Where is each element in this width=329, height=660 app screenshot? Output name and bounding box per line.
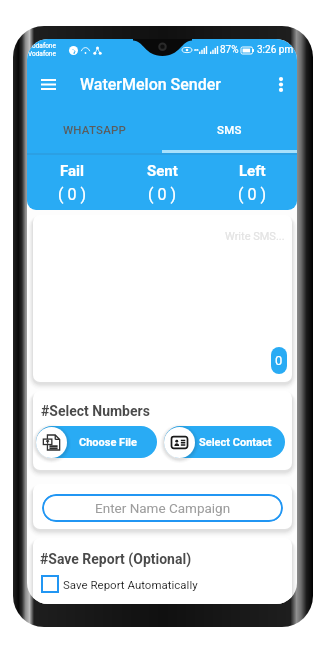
staticText: Choose File — [79, 436, 137, 449]
staticText: Left — [239, 162, 266, 180]
staticText: Vodafone — [28, 42, 56, 50]
staticText: 0 — [275, 353, 283, 368]
staticText: ( 0 ) — [58, 185, 86, 204]
button[interactable]: Navigation menu — [31, 67, 65, 101]
staticText: Save Report Automatically — [63, 578, 198, 591]
button[interactable]: Choose File — [36, 426, 157, 458]
staticText: Select Contact — [199, 436, 272, 449]
staticText: ( 0 ) — [238, 185, 266, 204]
staticText: 3:26 pm — [257, 44, 294, 56]
staticText: ³⁶ — [194, 47, 199, 54]
staticText: 87% — [220, 44, 239, 56]
staticText: WHATSAPP — [63, 123, 127, 136]
staticText: SMS — [217, 123, 242, 136]
staticText: WaterMelon Sender — [80, 75, 222, 94]
staticText: Write SMS... — [225, 230, 285, 243]
button[interactable]: More options — [266, 69, 296, 99]
staticText: Enter Name Campaign — [95, 500, 231, 516]
staticText: ( 0 ) — [148, 185, 176, 204]
staticText: #Save Report (Optional) — [40, 551, 192, 567]
staticText: Sent — [147, 162, 178, 180]
button[interactable]: Select Contact — [164, 426, 285, 458]
button[interactable]: Save Report Automatically — [42, 576, 198, 592]
staticText: #Select Numbers — [41, 403, 150, 419]
button[interactable]: Enter Name Campaign — [42, 494, 283, 522]
staticText: Fail — [60, 162, 84, 180]
button[interactable]: SMS — [162, 111, 297, 153]
button[interactable]: WHATSAPP — [27, 111, 162, 153]
staticText: Vodafone — [28, 50, 56, 58]
